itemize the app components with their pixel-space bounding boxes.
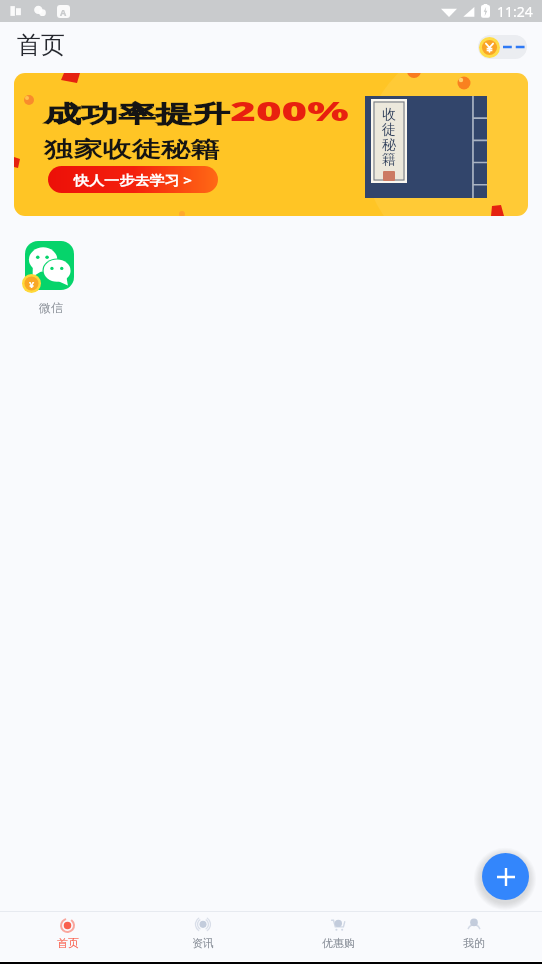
staticText: 200% [230,92,350,129]
staticText: 收 徒 秘 籍 [382,106,396,168]
staticText: 11:24 [497,2,533,21]
staticText: 微信 [39,300,63,315]
button[interactable]: 我的 [406,912,542,961]
button[interactable]: 成功率提升200% 独家收徒秘籍 [14,73,528,216]
staticText: 我的 [463,936,485,950]
staticText: A [60,6,67,18]
staticText: 成功率提升 [44,100,230,129]
button[interactable]: 资讯 [135,912,270,961]
staticText: 首页 [17,30,65,60]
button[interactable]: 首页 [0,912,135,961]
staticText: 优惠购 [322,936,355,950]
staticText: 独家收徒秘籍 [44,136,220,164]
button[interactable]: 优惠购 [270,912,406,961]
staticText: 首页 [57,936,79,950]
button[interactable]: Coin balance [478,35,527,59]
button[interactable]: ¥ [12,241,84,315]
staticText: ¥ [29,278,35,290]
staticText: 快人一步去学习 > [74,171,192,189]
button[interactable]: Add [482,853,529,900]
staticText: 资讯 [192,936,214,950]
